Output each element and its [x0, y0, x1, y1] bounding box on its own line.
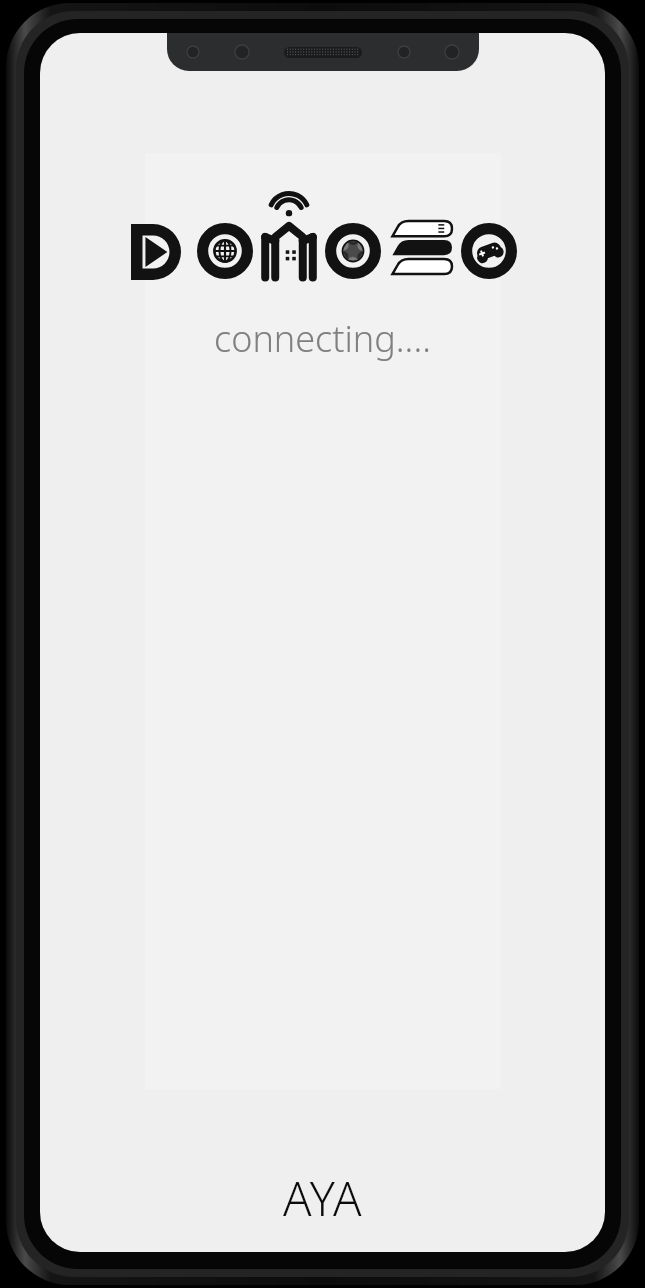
button[interactable]: Media player — [124, 188, 188, 280]
button[interactable]: Internet — [193, 188, 257, 280]
button[interactable]: Storage — [389, 188, 453, 280]
button[interactable]: Games — [457, 188, 521, 280]
button[interactable]: Smart home — [257, 188, 321, 280]
button[interactable]: Camera — [321, 188, 385, 280]
staticText: connecting.... — [214, 314, 431, 363]
staticText: AYA — [283, 1166, 363, 1230]
